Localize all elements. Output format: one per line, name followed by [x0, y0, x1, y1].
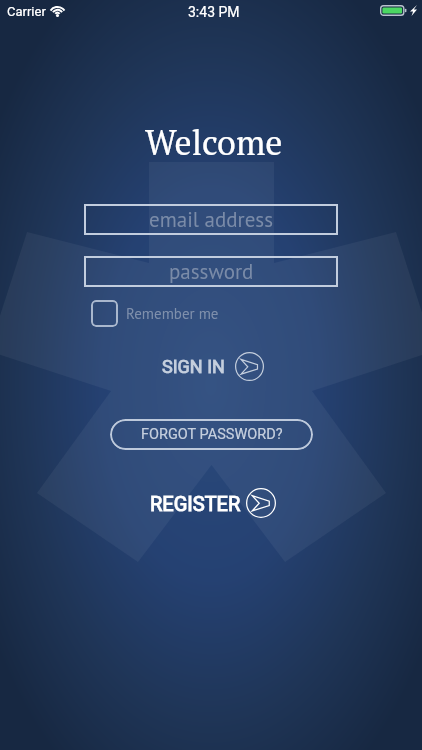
- staticText: Welcome: [145, 120, 283, 165]
- staticText: FORGOT PASSWORD?: [141, 426, 283, 443]
- button[interactable]: email address: [84, 204, 338, 235]
- button[interactable]: SIGN IN: [162, 352, 264, 381]
- button[interactable]: password: [84, 256, 338, 287]
- other: SIGN IN: [235, 352, 264, 381]
- button[interactable]: FORGOT PASSWORD?: [110, 419, 313, 450]
- staticText: REGISTER: [150, 492, 241, 515]
- staticText: 3:43 PM: [188, 4, 240, 20]
- staticText: Remember me: [126, 304, 219, 323]
- staticText: email address: [149, 206, 274, 233]
- staticText: SIGN IN: [162, 356, 225, 377]
- other: REGISTER: [246, 488, 276, 518]
- button[interactable]: Remember me: [91, 300, 219, 327]
- staticText: Carrier: [7, 4, 46, 19]
- staticText: password: [169, 258, 254, 285]
- button[interactable]: REGISTER: [150, 488, 276, 518]
